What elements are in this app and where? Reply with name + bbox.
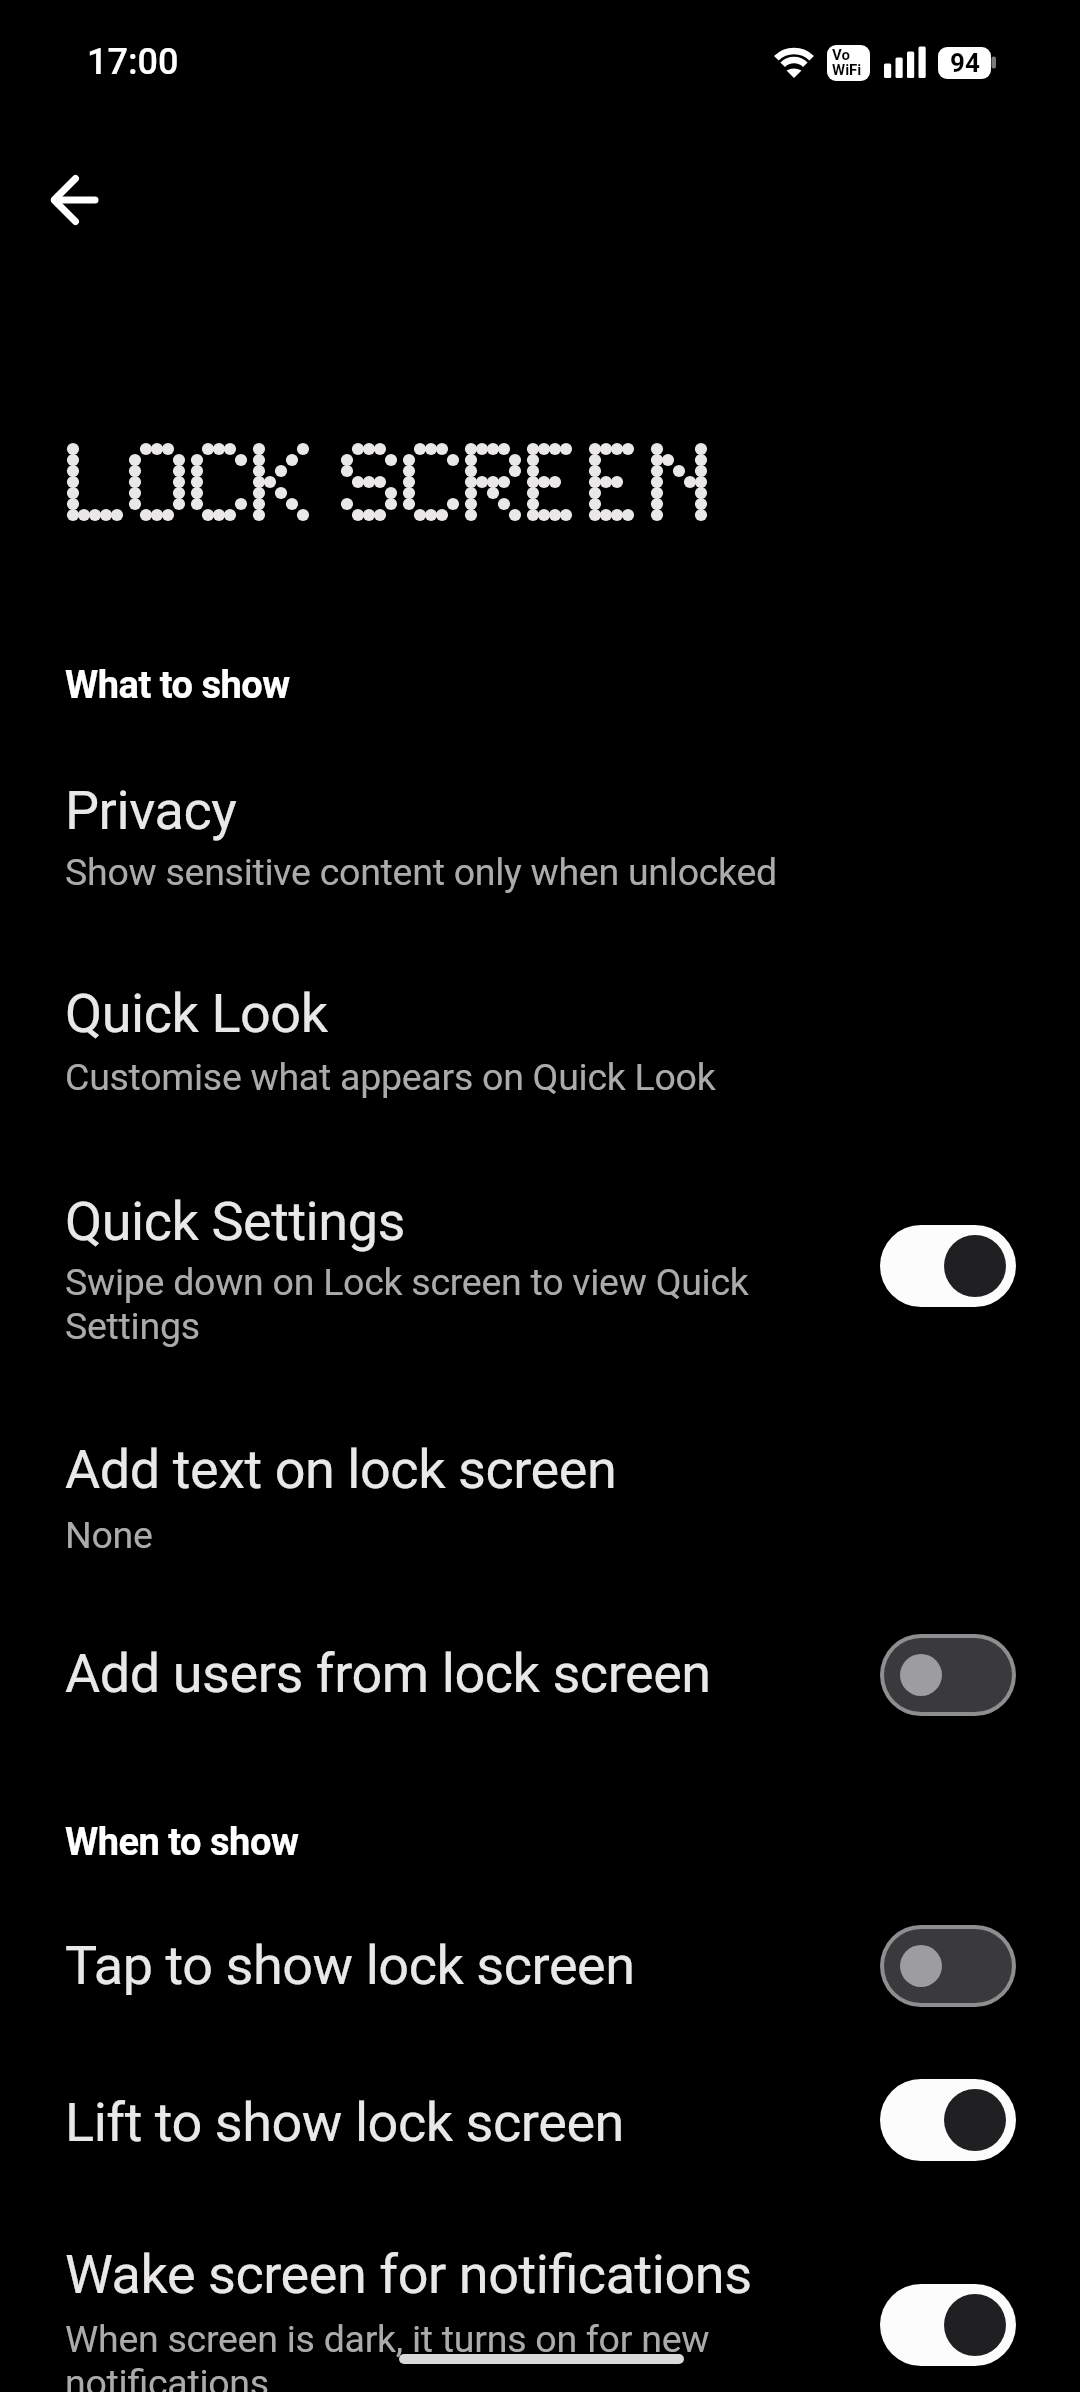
staticText: Swipe down on Lock screen to view Quick — [65, 1260, 749, 1304]
staticText: When to show — [65, 1820, 299, 1865]
staticText: Vo — [832, 46, 850, 64]
button[interactable]: Privacy — [0, 770, 1080, 910]
button[interactable]: Wake screen for notifications — [0, 2233, 1080, 2392]
button[interactable]: Add users from lock screen — [0, 1632, 1080, 1732]
staticText: Lift to show lock screen — [65, 2091, 624, 2154]
staticText: 17:00 — [87, 41, 179, 83]
button[interactable] — [880, 2284, 1016, 2366]
button[interactable]: Add text on lock screen — [0, 1428, 1080, 1568]
staticText: notifications — [65, 2361, 269, 2392]
staticText: What to show — [65, 663, 290, 708]
staticText: Add text on lock screen — [65, 1438, 617, 1501]
staticText: Show sensitive content only when unlocke… — [65, 850, 777, 894]
staticText: Quick Look — [65, 982, 328, 1045]
staticText: Customise what appears on Quick Look — [65, 1055, 716, 1099]
button[interactable] — [880, 1634, 1016, 1716]
staticText: Add users from lock screen — [65, 1642, 711, 1705]
staticText: 94 — [950, 48, 980, 78]
staticText: Wake screen for notifications — [65, 2243, 752, 2306]
button[interactable] — [31, 178, 119, 222]
button[interactable]: Lift to show lock screen — [0, 2081, 1080, 2181]
staticText: Quick Settings — [65, 1190, 405, 1253]
button[interactable]: Quick Settings — [0, 1180, 1080, 1370]
button[interactable]: Tap to show lock screen — [0, 1924, 1080, 2024]
staticText: WiFi — [832, 61, 862, 79]
button[interactable] — [880, 1925, 1016, 2007]
staticText: Privacy — [65, 779, 237, 842]
button[interactable] — [880, 1225, 1016, 1307]
button[interactable] — [880, 2079, 1016, 2161]
staticText: None — [65, 1513, 153, 1557]
staticText: Settings — [65, 1304, 200, 1348]
button[interactable]: Quick Look — [0, 972, 1080, 1112]
staticText: When screen is dark, it turns on for new — [65, 2317, 710, 2361]
staticText: Tap to show lock screen — [65, 1934, 635, 1997]
